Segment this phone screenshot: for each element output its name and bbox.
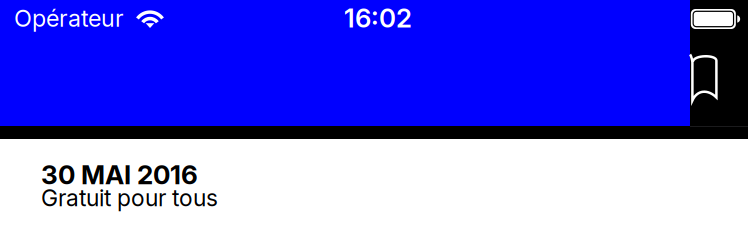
staticText: 30 MAI 2016 — [41, 159, 198, 191]
staticText: 16:02 — [344, 2, 412, 34]
staticText: Opérateur — [14, 4, 124, 32]
button[interactable]: Bookmark — [681, 49, 725, 105]
staticText: Gratuit pour tous — [41, 184, 218, 212]
